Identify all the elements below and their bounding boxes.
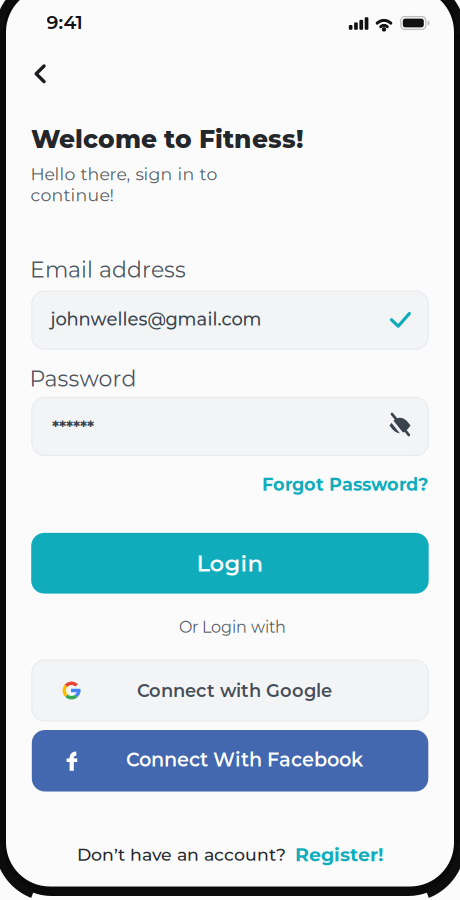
staticText: Login — [196, 549, 263, 577]
staticText: Email address — [30, 256, 186, 283]
staticText: Password — [30, 365, 137, 392]
button[interactable]: Login — [31, 533, 429, 594]
staticText: ****** — [52, 417, 94, 437]
button[interactable]: Connect With Facebook — [32, 730, 428, 791]
staticText: Connect With Facebook — [126, 748, 363, 771]
button[interactable]: Back — [18, 52, 62, 96]
button[interactable]: Connect with Google — [32, 660, 428, 721]
staticText: Don’t have an account? — [77, 844, 286, 865]
button[interactable]: Show password — [378, 403, 422, 447]
button[interactable]: Register! — [295, 843, 383, 866]
staticText: Connect with Google — [137, 680, 332, 701]
staticText: Welcome to Fitness! — [31, 124, 304, 154]
button[interactable]: Forgot Password? — [262, 474, 428, 495]
staticText: Register! — [295, 843, 383, 866]
staticText: Forgot Password? — [262, 474, 428, 495]
staticText: 9:41 — [46, 11, 82, 34]
staticText: Or Login with — [179, 617, 286, 637]
staticText: johnwelles@gmail.com — [50, 308, 261, 330]
staticText: Hello there, sign in to continue! — [30, 163, 217, 206]
